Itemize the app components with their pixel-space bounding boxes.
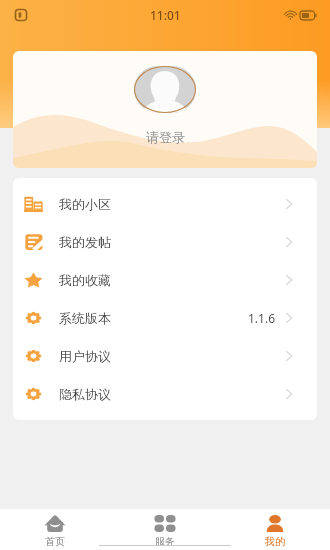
staticText: 服务: [155, 535, 175, 548]
button[interactable]: 服务: [110, 509, 220, 550]
staticText: 我的发帖: [59, 234, 111, 250]
button[interactable]: 首页: [0, 509, 110, 550]
staticText: 隐私协议: [59, 386, 111, 402]
other: Screenshot: [15, 9, 27, 21]
staticText: 我的小区: [59, 196, 111, 212]
staticText: 我的收藏: [59, 272, 111, 288]
staticText: 11:01: [150, 7, 181, 23]
staticText: 我的: [265, 535, 285, 548]
button[interactable]: 隐私协议: [13, 375, 317, 413]
staticText: 系统版本: [59, 310, 111, 326]
staticText: 1.1.6: [248, 310, 276, 326]
button[interactable]: 我的发帖: [13, 223, 317, 261]
button[interactable]: 我的: [220, 509, 330, 550]
staticText: 首页: [45, 535, 65, 548]
button[interactable]: 系统版本: [13, 299, 317, 337]
staticText: 用户协议: [59, 348, 111, 364]
button[interactable]: 用户协议: [13, 337, 317, 375]
button[interactable]: 我的小区: [13, 185, 317, 223]
button[interactable]: 我的收藏: [13, 261, 317, 299]
staticText: 请登录: [146, 129, 185, 145]
